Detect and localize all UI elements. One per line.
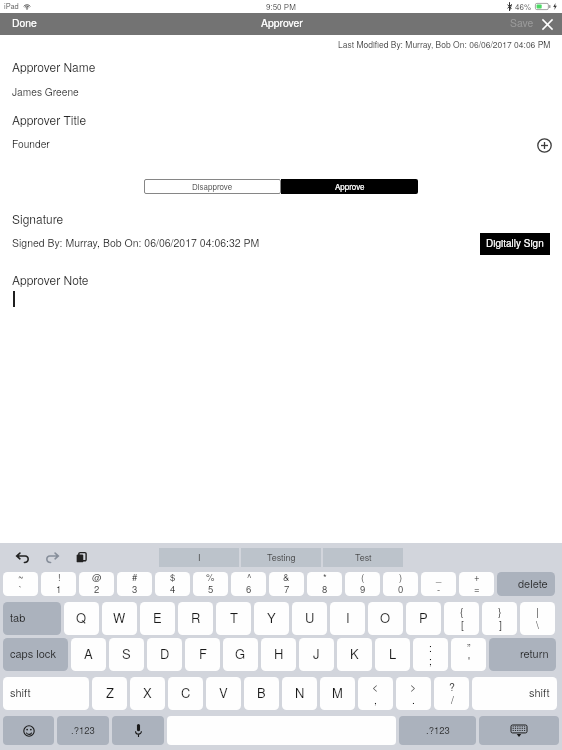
button[interactable]: V	[206, 677, 241, 710]
button[interactable]: <	[358, 677, 393, 710]
button[interactable]: U	[292, 602, 327, 635]
staticText: Done	[12, 17, 37, 29]
button[interactable]: I	[330, 602, 365, 635]
button[interactable]: Redo	[41, 548, 63, 567]
staticText: <	[372, 682, 379, 693]
button[interactable]: :	[413, 638, 448, 671]
button[interactable]: @	[79, 572, 114, 596]
staticText: ?	[449, 682, 455, 693]
staticText: [	[461, 620, 464, 631]
button[interactable]: B	[244, 677, 279, 710]
staticText: Signed By: Murray, Bob On: 06/06/2017 04…	[12, 237, 260, 249]
button[interactable]: C	[168, 677, 203, 710]
button[interactable]: %	[193, 572, 228, 596]
button[interactable]: #	[117, 572, 152, 596]
button[interactable]: delete	[497, 572, 555, 596]
button[interactable]: }	[482, 602, 517, 635]
button[interactable]: K	[337, 638, 372, 671]
button[interactable]: shift	[3, 677, 89, 710]
button[interactable]: Testing	[241, 548, 321, 567]
staticText: M	[332, 686, 343, 701]
staticText: 9:50 PM	[266, 2, 296, 11]
button[interactable]: (	[345, 572, 380, 596]
button[interactable]: S	[109, 638, 144, 671]
button[interactable]: Digitally Sign	[480, 233, 550, 255]
button[interactable]: .?123	[399, 716, 476, 745]
staticText: 3	[132, 585, 138, 595]
button[interactable]: return	[489, 638, 556, 671]
staticText: 4	[170, 585, 176, 595]
staticText: '	[468, 656, 471, 667]
button[interactable]: X	[130, 677, 165, 710]
staticText: iPad	[4, 2, 19, 11]
button[interactable]: R	[178, 602, 213, 635]
button[interactable]: |	[520, 602, 555, 635]
button[interactable]: M	[320, 677, 355, 710]
button[interactable]: G	[223, 638, 258, 671]
staticText: shift	[529, 687, 550, 700]
button[interactable]: O	[368, 602, 403, 635]
button[interactable]: Done	[0, 13, 47, 35]
button[interactable]: {	[444, 602, 479, 635]
staticText: V	[219, 686, 228, 701]
staticText: ,	[374, 695, 377, 706]
button[interactable]: A	[71, 638, 106, 671]
staticText: F	[199, 647, 207, 662]
staticText: X	[143, 686, 152, 701]
button[interactable]: Save	[505, 13, 538, 35]
button[interactable]: F	[185, 638, 220, 671]
button[interactable]: .?123	[57, 716, 109, 745]
button[interactable]: I	[159, 548, 239, 567]
button[interactable]: Y	[254, 602, 289, 635]
button[interactable]: *	[307, 572, 342, 596]
staticText: S	[122, 647, 131, 662]
button[interactable]: Hide keyboard	[479, 716, 559, 745]
button[interactable]: !	[41, 572, 76, 596]
button[interactable]: ~	[3, 572, 38, 596]
staticText: |	[536, 607, 539, 618]
staticText: I	[198, 552, 201, 563]
button[interactable]: >	[396, 677, 431, 710]
staticText: K	[350, 647, 359, 662]
button[interactable]: P	[406, 602, 441, 635]
button[interactable]: ”	[451, 638, 486, 671]
button[interactable]: )	[383, 572, 418, 596]
staticText: )	[399, 573, 403, 583]
staticText: 9	[360, 585, 366, 595]
staticText: Test	[355, 552, 372, 563]
staticText: .?123	[71, 725, 95, 736]
button[interactable]: Emoji	[3, 716, 54, 745]
button[interactable]: E	[140, 602, 175, 635]
button[interactable]: ?	[434, 677, 469, 710]
button[interactable]: Q	[64, 602, 99, 635]
button[interactable]: W	[102, 602, 137, 635]
button[interactable]: Dictate	[112, 716, 164, 745]
button[interactable]: caps lock	[3, 638, 68, 671]
button[interactable]: shift	[472, 677, 557, 710]
button[interactable]: &	[269, 572, 304, 596]
button[interactable]: _	[421, 572, 456, 596]
button[interactable]: $	[155, 572, 190, 596]
button[interactable]: T	[216, 602, 251, 635]
staticText: James Greene	[12, 86, 79, 98]
button[interactable]: ^	[231, 572, 266, 596]
button[interactable]: tab	[3, 602, 61, 635]
button[interactable]: L	[375, 638, 410, 671]
button[interactable]: H	[261, 638, 296, 671]
button[interactable]: D	[147, 638, 182, 671]
button[interactable]: Undo	[12, 548, 34, 567]
button[interactable]: +	[459, 572, 494, 596]
button[interactable]: Z	[92, 677, 127, 710]
button[interactable]: Test	[323, 548, 403, 567]
staticText: /	[451, 695, 454, 706]
button[interactable]: Disapprove	[144, 179, 281, 194]
staticText: }	[498, 607, 502, 618]
button[interactable]: J	[299, 638, 334, 671]
button[interactable]: Add	[533, 134, 555, 156]
button[interactable]: Close	[535, 13, 559, 35]
button[interactable]: Paste	[70, 548, 92, 567]
button[interactable]: Approve	[281, 179, 418, 194]
button[interactable]: N	[282, 677, 317, 710]
staticText: 5	[208, 585, 214, 595]
